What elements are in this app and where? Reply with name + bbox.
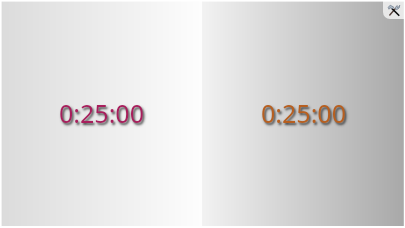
button[interactable]: Developer tools <box>383 0 405 19</box>
staticText: 0:25:00 <box>59 96 144 130</box>
staticText: 0:25:00 <box>261 96 346 130</box>
